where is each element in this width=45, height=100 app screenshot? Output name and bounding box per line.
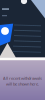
staticText: All recent withdrawals bbox=[3, 75, 42, 81]
staticText: will be shown here. bbox=[6, 81, 39, 86]
